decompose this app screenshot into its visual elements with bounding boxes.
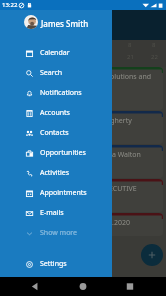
staticText: 18 [31, 53, 38, 61]
button[interactable]: Opportunities [0, 143, 112, 163]
staticText: Activities [40, 168, 70, 178]
button[interactable]: Lorem ipsum dolor sit ame 23.3.2020 [3, 213, 163, 236]
button[interactable]: Lorem ipsum dolor sit ame IT Solutions a… [3, 67, 163, 110]
staticText: 8 [152, 41, 156, 49]
staticText: 22 [151, 53, 158, 61]
staticText: Notifications [40, 88, 82, 98]
button[interactable]: E-mails [0, 203, 112, 223]
staticText: Accounts [40, 108, 70, 118]
staticText: 21 [127, 53, 134, 61]
staticText: 19 [55, 53, 62, 61]
button[interactable]: Show more [0, 223, 112, 243]
button[interactable]: Lorem ipsum dol Christine Dougherty [3, 111, 163, 144]
staticText: Search [40, 68, 63, 78]
button[interactable]: Add [141, 244, 163, 266]
staticText: Show more [40, 228, 78, 238]
staticText: Lorem ipsum dolor sit ame IT Solutions a… [8, 72, 152, 82]
button[interactable]: Calendar [0, 43, 112, 63]
button[interactable]: Search [0, 63, 112, 83]
button[interactable]: Notifications [0, 83, 112, 103]
button[interactable]: Appointments [0, 183, 112, 203]
staticText: Contacts [40, 128, 69, 138]
button[interactable]: Activities [0, 163, 112, 183]
staticText: 8 [128, 41, 132, 49]
staticText: Lorem ipsum dolor sit am Hanna Walton [8, 150, 141, 160]
staticText: Appointments [40, 188, 87, 198]
button[interactable]: Contacts [0, 123, 112, 143]
button[interactable]: Profile [24, 15, 38, 29]
staticText: Lorem ipsum dol Christine Dougherty [8, 116, 132, 126]
staticText: Lorem ipsum dolor sit ame 23.3.2020 [8, 218, 130, 228]
staticText: James Smith [41, 18, 89, 29]
button[interactable]: Lorem ipsum dolor si SALES EXECUTIVE [3, 179, 163, 212]
staticText: 13:22 [2, 1, 18, 9]
button[interactable]: Lorem ipsum dolor sit am Hanna Walton [3, 145, 163, 178]
staticText: Opportunities [40, 148, 86, 158]
staticText: Settings [40, 259, 67, 269]
staticText: Lorem ipsum dolor si SALES EXECUTIVE [8, 184, 137, 194]
button[interactable]: Settings [0, 254, 112, 274]
button[interactable]: Accounts [0, 103, 112, 123]
staticText: Calendar [40, 48, 70, 58]
staticText: E-mails [40, 208, 64, 218]
